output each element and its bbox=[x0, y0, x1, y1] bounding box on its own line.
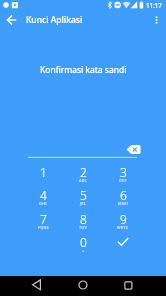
staticText: 11:17 bbox=[146, 1, 162, 9]
staticText: Kunci Aplikasi bbox=[26, 14, 83, 26]
staticText: Konfirmasi kata sandi bbox=[40, 64, 127, 76]
staticText: PQRS bbox=[38, 225, 49, 230]
button[interactable] bbox=[68, 276, 98, 296]
staticText: + bbox=[82, 248, 85, 253]
button[interactable]: 1 bbox=[23, 161, 63, 183]
staticText: GHI bbox=[39, 201, 47, 206]
button[interactable]: 8 bbox=[63, 208, 103, 230]
button[interactable]: 0 bbox=[63, 231, 103, 253]
staticText: 8 bbox=[80, 211, 87, 227]
staticText: 6 bbox=[120, 187, 127, 203]
button[interactable] bbox=[148, 11, 165, 29]
staticText: DEF bbox=[119, 178, 127, 183]
button[interactable]: 2 bbox=[63, 161, 103, 183]
staticText: 9 bbox=[120, 211, 127, 227]
staticText: 0 bbox=[80, 234, 87, 250]
staticText: 4 bbox=[40, 187, 47, 203]
button[interactable] bbox=[22, 276, 52, 296]
staticText: 5 bbox=[80, 187, 87, 203]
staticText: WXYZ bbox=[117, 225, 129, 230]
staticText: TUV bbox=[79, 225, 88, 230]
button[interactable]: 9 bbox=[103, 208, 143, 230]
button[interactable]: 5 bbox=[63, 184, 103, 206]
button[interactable] bbox=[113, 276, 144, 296]
button[interactable]: 6 bbox=[103, 184, 143, 206]
button[interactable] bbox=[2, 11, 20, 29]
staticText: 3 bbox=[120, 164, 127, 180]
button[interactable]: 3 bbox=[103, 161, 143, 183]
staticText: MNO bbox=[118, 201, 129, 206]
button[interactable] bbox=[124, 142, 144, 156]
button[interactable]: 4 bbox=[23, 184, 63, 206]
staticText: 7 bbox=[40, 211, 47, 227]
staticText: 1 bbox=[40, 164, 47, 180]
button[interactable]: 7 bbox=[23, 208, 63, 230]
button[interactable] bbox=[103, 231, 143, 253]
staticText: JKL bbox=[80, 201, 87, 206]
staticText: ABC bbox=[79, 178, 88, 183]
staticText: 2 bbox=[80, 164, 87, 180]
